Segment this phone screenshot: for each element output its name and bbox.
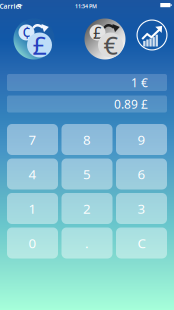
staticText: 0.89 £ xyxy=(114,96,148,112)
button[interactable]: . xyxy=(61,227,112,258)
button[interactable]: 4 xyxy=(7,158,58,189)
button[interactable]: 1 xyxy=(7,193,58,224)
button[interactable]: Convert euro to pound xyxy=(13,18,54,59)
staticText: C xyxy=(137,234,145,252)
button[interactable]: 0 xyxy=(7,227,58,258)
staticText: 2 xyxy=(83,200,91,217)
staticText: 5 xyxy=(83,165,91,183)
staticText: 1 € xyxy=(131,74,148,90)
staticText: 1 xyxy=(28,200,36,217)
button[interactable]: 9 xyxy=(116,124,167,155)
button[interactable]: 3 xyxy=(116,193,167,224)
staticText: £ xyxy=(32,28,46,62)
staticText: ¢ xyxy=(22,22,31,43)
staticText: 9 xyxy=(137,131,145,148)
staticText: 7 xyxy=(28,131,36,148)
staticText: £ xyxy=(93,22,102,43)
staticText: . xyxy=(85,234,89,252)
button[interactable]: Convert pound to euro xyxy=(84,18,125,59)
button[interactable]: Exchange rate chart xyxy=(136,19,167,50)
staticText: € xyxy=(103,28,117,62)
button[interactable]: 8 xyxy=(61,124,112,155)
staticText: 6 xyxy=(137,165,145,183)
staticText: 4 xyxy=(28,165,36,183)
staticText: 8 xyxy=(83,131,91,148)
staticText: 0 xyxy=(28,234,36,252)
staticText: 11:34 PM xyxy=(75,3,97,10)
staticText: 3 xyxy=(137,200,145,217)
button[interactable]: 5 xyxy=(61,158,112,189)
button[interactable]: 2 xyxy=(61,193,112,224)
button[interactable]: 6 xyxy=(116,158,167,189)
button[interactable]: 7 xyxy=(7,124,58,155)
button[interactable]: C xyxy=(116,227,167,258)
staticText: Carrier xyxy=(0,2,22,11)
